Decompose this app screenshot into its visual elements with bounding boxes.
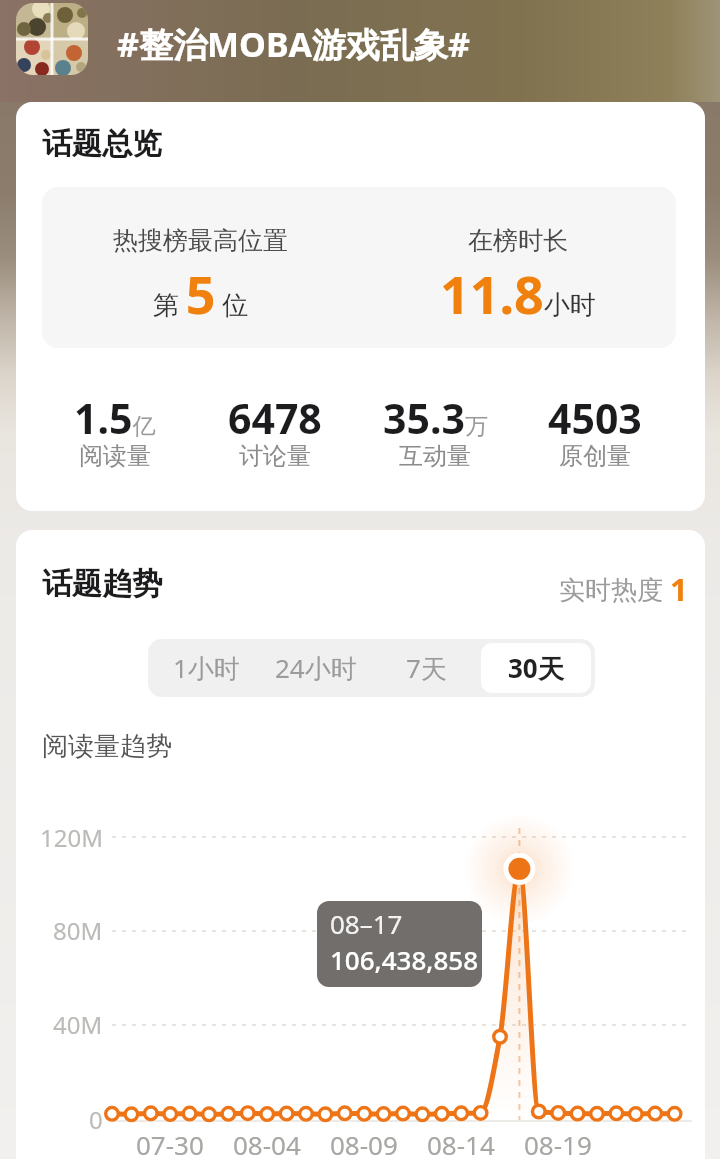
- staticText: 7天: [406, 650, 447, 686]
- staticText: 106,438,858: [330, 942, 479, 977]
- staticText: 话题总览: [42, 125, 162, 163]
- staticText: 阅读量: [79, 441, 151, 471]
- staticText: 35.3万: [383, 390, 488, 446]
- staticText: #整治MOBA游戏乱象#: [117, 21, 471, 67]
- staticText: 07-30: [136, 1127, 204, 1159]
- staticText: 4503: [548, 390, 642, 446]
- staticText: 40M: [53, 1008, 103, 1040]
- staticText: 30天: [508, 650, 564, 686]
- staticText: 24小时: [275, 650, 357, 686]
- button[interactable]: 35.3万: [355, 390, 515, 476]
- staticText: 0: [89, 1103, 103, 1135]
- button[interactable]: 在榜时长: [359, 187, 676, 348]
- staticText: 80M: [53, 914, 103, 946]
- button[interactable]: [16, 3, 88, 75]
- staticText: 1: [670, 568, 688, 610]
- button[interactable]: 4503: [515, 390, 675, 476]
- staticText: 实时热度: [559, 571, 670, 607]
- staticText: 讨论量: [239, 441, 311, 471]
- staticText: 1小时: [173, 650, 240, 686]
- button[interactable]: 30天: [481, 643, 591, 693]
- staticText: 话题趋势: [42, 565, 162, 603]
- staticText: 阅读量趋势: [42, 730, 172, 763]
- staticText: 08-19: [524, 1127, 592, 1159]
- staticText: 120M: [40, 821, 103, 853]
- staticText: 08–17: [330, 906, 403, 941]
- button[interactable]: 6478: [195, 390, 355, 476]
- staticText: 08-14: [427, 1127, 495, 1159]
- staticText: 6478: [228, 390, 322, 446]
- button[interactable]: 热搜榜最高位置: [42, 187, 359, 348]
- staticText: 原创量: [559, 441, 631, 471]
- button[interactable]: 7天: [371, 643, 481, 693]
- button[interactable]: 1.5亿: [34, 390, 195, 476]
- staticText: 热搜榜最高位置: [113, 225, 288, 256]
- staticText: 第 5 位: [153, 258, 249, 329]
- button[interactable]: 24小时: [261, 643, 371, 693]
- staticText: 11.8小时: [440, 258, 596, 329]
- staticText: 在榜时长: [468, 225, 568, 256]
- staticText: 08-09: [330, 1127, 398, 1159]
- staticText: 互动量: [399, 441, 471, 471]
- button[interactable]: 1小时: [152, 643, 261, 693]
- staticText: 1.5亿: [74, 390, 156, 446]
- staticText: 08-04: [233, 1127, 301, 1159]
